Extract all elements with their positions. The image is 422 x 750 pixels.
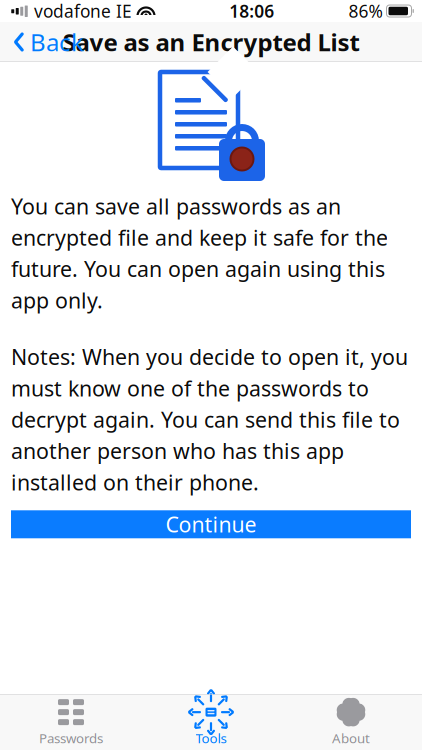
staticText: About bbox=[332, 729, 370, 747]
staticText: Notes: When you decide to open it, you m… bbox=[11, 343, 408, 496]
staticText: Save as an Encrypted List bbox=[62, 26, 359, 58]
button[interactable]: Passwords bbox=[1, 696, 141, 748]
staticText: Continue bbox=[165, 510, 256, 538]
staticText: 18:06 bbox=[229, 0, 274, 22]
button[interactable]: Tools bbox=[141, 696, 281, 748]
button[interactable]: Continue bbox=[11, 510, 411, 538]
staticText: Back bbox=[30, 26, 84, 58]
staticText: You can save all passwords as an encrypt… bbox=[11, 192, 388, 314]
staticText: vodafone IE bbox=[34, 0, 132, 22]
staticText: Passwords bbox=[39, 729, 103, 747]
button[interactable]: Back bbox=[0, 22, 94, 62]
staticText: Tools bbox=[195, 729, 226, 747]
button[interactable]: About bbox=[281, 696, 421, 748]
staticText: 86% bbox=[348, 0, 382, 22]
